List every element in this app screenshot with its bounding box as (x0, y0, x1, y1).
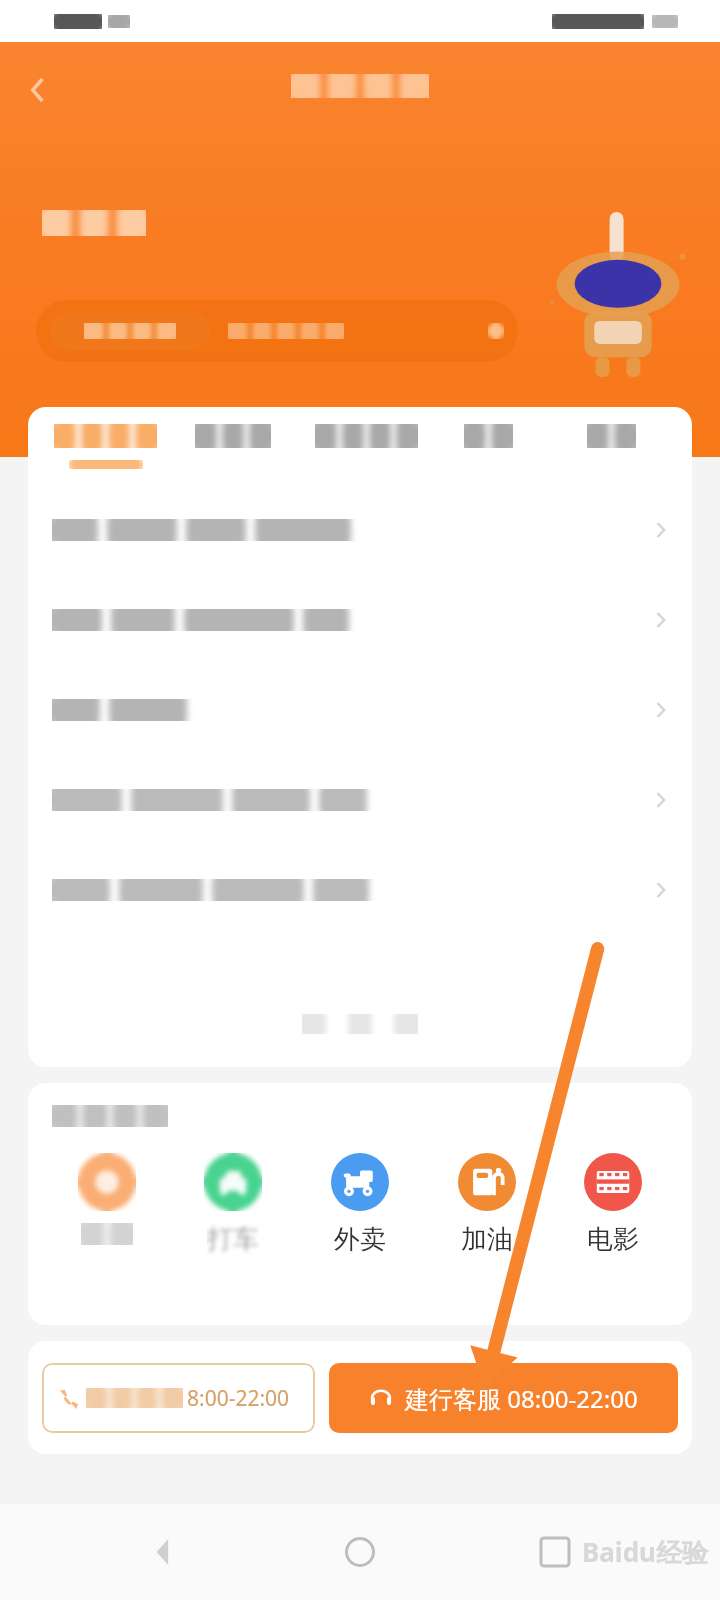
button[interactable]: Back (135, 1522, 195, 1582)
button[interactable]: 加油 (429, 1149, 545, 1260)
button[interactable] (28, 665, 692, 755)
staticText: 电影 (587, 1223, 639, 1256)
button[interactable]: Home (330, 1522, 390, 1582)
staticText: 打车 (207, 1223, 259, 1256)
button[interactable] (28, 981, 692, 1067)
button[interactable] (28, 845, 692, 935)
staticText: Baidu经验 (582, 1534, 708, 1570)
button[interactable]: 8:00-22:00 (42, 1363, 315, 1433)
staticText: 加油 (461, 1223, 513, 1256)
button[interactable] (28, 575, 692, 665)
button[interactable] (462, 418, 515, 475)
button[interactable] (36, 300, 518, 362)
button[interactable] (193, 418, 273, 475)
button[interactable] (52, 418, 159, 475)
button[interactable]: Recents (525, 1522, 585, 1582)
button[interactable] (313, 418, 420, 475)
button[interactable] (28, 485, 692, 575)
staticText: 外卖 (334, 1223, 386, 1256)
button[interactable]: 电影 (555, 1149, 671, 1260)
button[interactable] (585, 418, 638, 475)
staticText: 8:00-22:00 (187, 1384, 290, 1413)
button[interactable]: 打车 (175, 1149, 291, 1260)
button[interactable] (49, 1149, 165, 1249)
button[interactable]: 外卖 (302, 1149, 418, 1260)
button[interactable]: Back (10, 62, 66, 118)
button[interactable] (28, 755, 692, 845)
staticText: 建行客服 08:00-22:00 (405, 1382, 638, 1415)
button[interactable]: 建行客服 08:00-22:00 (329, 1363, 678, 1433)
